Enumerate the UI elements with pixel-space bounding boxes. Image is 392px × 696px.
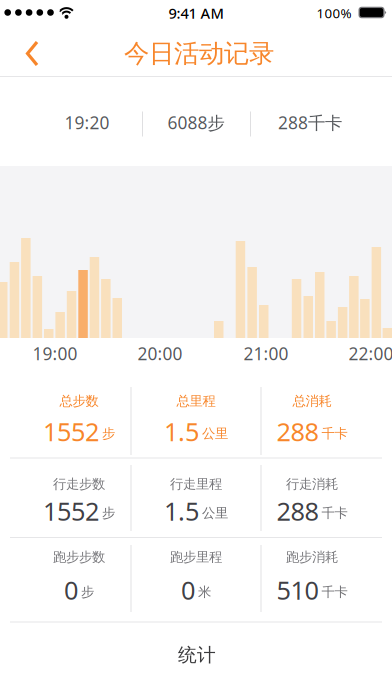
staticText: 行走消耗 — [286, 476, 338, 492]
staticText: 1.5 — [164, 494, 199, 528]
staticText: 跑步里程 — [170, 549, 222, 565]
staticText: 510 — [276, 573, 318, 607]
staticText: 行走里程 — [170, 476, 222, 492]
staticText: 21:00 — [243, 342, 288, 365]
staticText: 288 — [276, 494, 318, 528]
staticText: 统计 — [178, 643, 216, 666]
staticText: 公里 — [202, 505, 228, 521]
staticText: 100% — [316, 4, 351, 22]
staticText: 千卡 — [321, 505, 347, 521]
staticText: 公里 — [202, 425, 228, 442]
staticText: 总消耗 — [292, 393, 331, 409]
staticText: 千卡 — [321, 425, 347, 442]
staticText: 6088步 — [167, 111, 224, 134]
staticText: 千卡 — [321, 584, 347, 600]
staticText: 288千卡 — [278, 111, 342, 134]
staticText: 1.5 — [164, 415, 199, 448]
staticText: 19:20 — [64, 111, 109, 134]
staticText: 1552 — [43, 415, 99, 448]
button[interactable] — [10, 30, 54, 75]
staticText: 跑步消耗 — [286, 549, 338, 565]
staticText: 19:00 — [32, 342, 77, 365]
staticText: 步 — [102, 425, 115, 442]
staticText: 总里程 — [176, 393, 215, 409]
staticText: 288 — [276, 415, 318, 448]
staticText: 行走步数 — [53, 476, 105, 492]
staticText: 1552 — [43, 494, 99, 528]
staticText: 米 — [198, 584, 211, 600]
staticText: 今日活动记录 — [124, 38, 274, 69]
staticText: 9:41 AM — [168, 3, 223, 23]
staticText: 20:00 — [137, 342, 182, 365]
staticText: 总步数 — [59, 393, 98, 409]
button[interactable]: 统计 — [137, 635, 257, 675]
staticText: 0 — [181, 573, 195, 607]
staticText: 22:00 — [348, 342, 392, 365]
staticText: 跑步步数 — [53, 549, 105, 565]
staticText: 步 — [81, 584, 94, 600]
staticText: 步 — [102, 505, 115, 521]
staticText: 0 — [64, 573, 78, 607]
